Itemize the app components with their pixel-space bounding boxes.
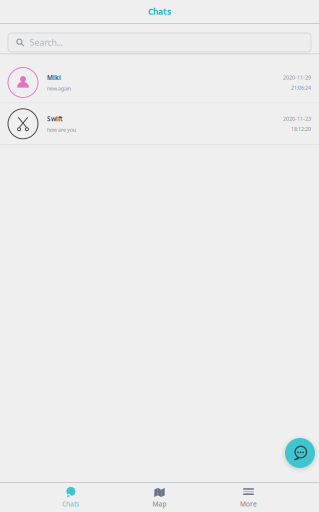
staticText: 18:12:20 <box>291 125 311 133</box>
staticText: Chats <box>62 500 79 508</box>
staticText: More <box>240 500 257 508</box>
staticText: 2020-11-23 <box>283 115 311 122</box>
staticText: Swift <box>47 114 63 123</box>
button[interactable]: Map <box>115 483 204 512</box>
button[interactable]: More <box>204 483 293 512</box>
staticText: Chats <box>148 6 171 17</box>
staticText: Search... <box>29 37 62 48</box>
staticText: how are you <box>47 126 76 133</box>
button[interactable]: Miki <box>0 62 319 102</box>
staticText: new again <box>47 85 71 92</box>
button[interactable]: Swift <box>0 103 319 144</box>
staticText: Miki <box>47 73 61 82</box>
staticText: 2020-11-29 <box>283 74 311 81</box>
staticText: 21:06:24 <box>291 84 311 91</box>
button[interactable]: Chats <box>26 483 115 512</box>
staticText: Map <box>152 500 166 508</box>
button[interactable]: New message <box>285 438 315 468</box>
